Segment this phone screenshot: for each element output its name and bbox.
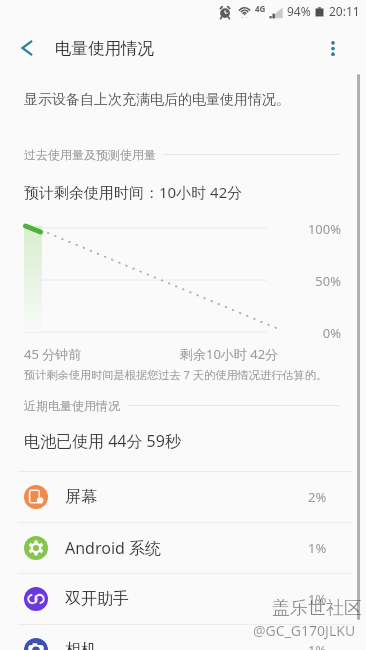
staticText: 盖乐世社区 bbox=[272, 597, 362, 620]
staticText: 1% bbox=[308, 590, 327, 608]
staticText: 0% bbox=[270, 324, 341, 342]
staticText: 20:11 bbox=[329, 3, 360, 19]
staticText: 屏幕 bbox=[65, 487, 97, 507]
staticText: 显示设备自上次充满电后的电量使用情况。 bbox=[24, 91, 290, 109]
staticText: Android 系统 bbox=[65, 537, 162, 559]
staticText: 4G bbox=[255, 3, 266, 14]
button[interactable]: Back bbox=[0, 24, 55, 72]
staticText: 45 分钟前 bbox=[24, 345, 82, 363]
staticText: 50% bbox=[270, 272, 341, 290]
button[interactable]: More options bbox=[318, 24, 366, 72]
button[interactable]: 屏幕 bbox=[0, 472, 366, 522]
button[interactable]: 相机 bbox=[0, 625, 366, 650]
staticText: 100% bbox=[270, 220, 341, 238]
staticText: 1% bbox=[308, 641, 327, 650]
staticText: 电池已使用 44分 59秒 bbox=[24, 430, 181, 452]
staticText: 预计剩余使用时间是根据您过去 7 天的使用情况进行估算的。 bbox=[24, 367, 328, 382]
staticText: 近期电量使用情况 bbox=[24, 398, 120, 413]
button[interactable]: Android 系统 bbox=[0, 523, 366, 573]
staticText: 2% bbox=[308, 488, 327, 506]
staticText: 过去使用量及预测使用量 bbox=[24, 147, 156, 162]
staticText: 预计剩余使用时间：10小时 42分 bbox=[24, 182, 243, 202]
staticText: 1% bbox=[308, 539, 327, 557]
staticText: 剩余10小时 42分 bbox=[180, 345, 279, 363]
staticText: 94% bbox=[287, 3, 311, 19]
button[interactable]: 双开助手 bbox=[0, 574, 366, 624]
staticText: 电量使用情况 bbox=[55, 38, 154, 59]
staticText: @GC_G170JLKU bbox=[253, 621, 356, 640]
staticText: 相机 bbox=[65, 640, 97, 650]
staticText: 双开助手 bbox=[65, 589, 129, 609]
